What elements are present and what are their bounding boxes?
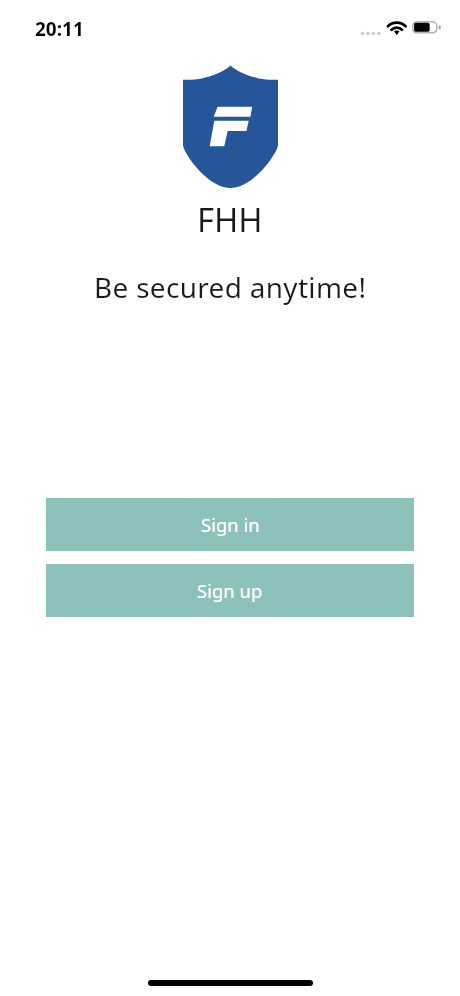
staticText: Sign up <box>197 578 263 603</box>
button[interactable]: Sign up <box>46 564 414 617</box>
staticText: FHH <box>197 197 263 242</box>
other: Cellular signal <box>359 30 381 37</box>
staticText: Sign in <box>201 512 260 537</box>
staticText: Be secured anytime! <box>94 268 367 306</box>
other: Wi-Fi <box>384 19 410 36</box>
other: Battery <box>412 21 441 35</box>
other: FHH logo <box>183 65 278 188</box>
staticText: 20:11 <box>35 16 84 42</box>
button[interactable]: Sign in <box>46 498 414 551</box>
